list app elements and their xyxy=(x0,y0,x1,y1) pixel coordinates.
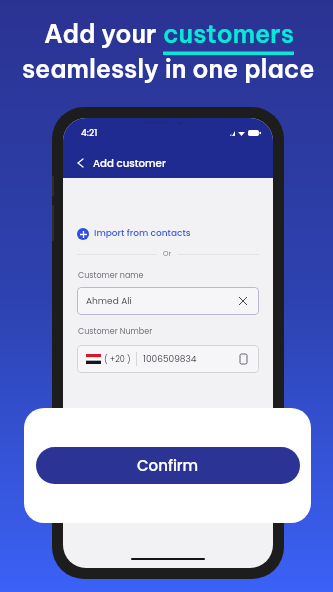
button[interactable]: Clear name xyxy=(236,294,250,308)
button[interactable]: Pick from contacts xyxy=(236,352,250,366)
button[interactable]: Ahmed Ali xyxy=(77,287,259,315)
staticText: 4:21 xyxy=(81,127,98,140)
staticText: Import from contacts xyxy=(94,227,191,240)
staticText: Customer Number xyxy=(78,326,153,337)
staticText: Or xyxy=(163,249,172,259)
staticText: Ahmed Ali xyxy=(86,295,236,308)
staticText: Add customer xyxy=(93,156,166,170)
staticText: Confirm xyxy=(137,455,199,476)
button[interactable]: Confirm xyxy=(36,447,300,484)
staticText: Customer name xyxy=(78,270,144,281)
staticText: ( +20 ) xyxy=(104,354,131,365)
button[interactable]: Import from contacts xyxy=(77,227,191,240)
staticText: 1006509834 xyxy=(143,353,236,366)
button[interactable]: ( +20 ) xyxy=(77,345,259,373)
staticText: Add your xyxy=(44,18,163,50)
staticText: seamlessly in one place xyxy=(22,53,315,85)
button[interactable]: Back xyxy=(70,153,90,173)
staticText: customers xyxy=(163,18,294,50)
